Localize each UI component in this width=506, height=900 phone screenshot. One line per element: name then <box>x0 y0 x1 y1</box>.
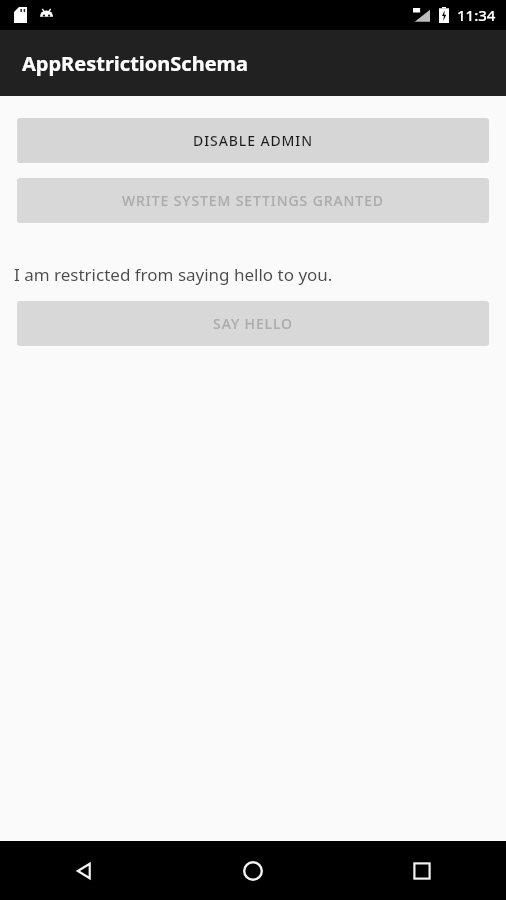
staticText: SAY HELLO <box>213 314 293 333</box>
button[interactable]: Back <box>0 841 168 900</box>
staticText: AppRestrictionSchema <box>22 50 249 77</box>
staticText: DISABLE ADMIN <box>193 131 313 150</box>
button[interactable]: Home <box>168 841 337 900</box>
staticText: I am restricted from saying hello to you… <box>14 263 333 286</box>
button[interactable]: WRITE SYSTEM SETTINGS GRANTED <box>17 178 489 223</box>
staticText: WRITE SYSTEM SETTINGS GRANTED <box>122 191 384 210</box>
button[interactable]: Recent apps <box>337 841 506 900</box>
button[interactable]: DISABLE ADMIN <box>17 118 489 163</box>
staticText: 11:34 <box>457 5 496 25</box>
button[interactable]: SAY HELLO <box>17 301 489 346</box>
